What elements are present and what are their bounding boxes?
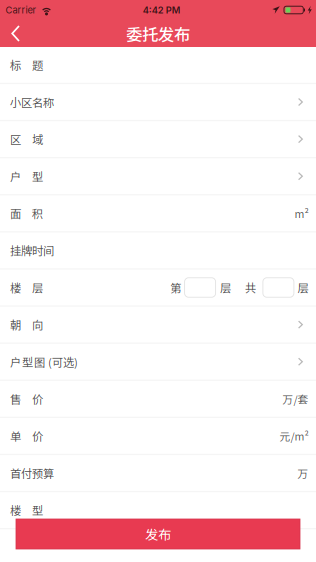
staticText: 户 型 xyxy=(10,168,43,184)
staticText: 委托发布 xyxy=(126,22,190,45)
staticText: m² xyxy=(294,206,308,221)
button[interactable]: 首付预算 xyxy=(0,455,316,492)
button[interactable]: 楼 层 xyxy=(0,270,316,307)
staticText: 面 积 xyxy=(10,205,43,221)
button[interactable]: Back xyxy=(0,21,34,46)
staticText: 楼 层 xyxy=(10,279,43,296)
staticText: 共 xyxy=(245,279,256,296)
button[interactable]: 户 型 xyxy=(0,158,316,195)
staticText: 元/m² xyxy=(279,428,308,444)
staticText: 层 xyxy=(297,279,308,296)
staticText: 标 题 xyxy=(10,57,43,73)
button[interactable]: 区 域 xyxy=(0,121,316,158)
button[interactable]: 挂牌时间 xyxy=(0,232,316,270)
button[interactable]: 楼 型 xyxy=(0,492,316,529)
staticText: 户 型 图 (可选) xyxy=(10,353,78,370)
staticText: 楼 型 xyxy=(10,502,43,518)
staticText: 单 价 xyxy=(10,428,43,444)
staticText: Carrier xyxy=(5,4,36,16)
button[interactable]: 标 题 xyxy=(0,47,316,84)
staticText: 层 xyxy=(220,279,231,296)
staticText: 4:42 PM xyxy=(143,4,181,16)
button[interactable]: 朝 向 xyxy=(0,307,316,344)
button[interactable]: 小区名称 xyxy=(0,84,316,121)
button[interactable]: 售 价 xyxy=(0,381,316,418)
button[interactable]: 面 积 xyxy=(0,195,316,232)
staticText: 区 域 xyxy=(10,131,43,147)
button[interactable]: 户 型 图 (可选) xyxy=(0,344,316,381)
button[interactable]: 单 价 xyxy=(0,418,316,455)
staticText: 发布 xyxy=(145,524,171,544)
staticText: 售 价 xyxy=(10,391,43,407)
button[interactable]: 发布 xyxy=(16,519,300,549)
staticText: 万/套 xyxy=(282,391,308,406)
staticText: 万 xyxy=(297,465,308,481)
staticText: 首付预算 xyxy=(10,465,54,481)
staticText: 小区名称 xyxy=(10,94,54,110)
staticText: 挂牌时间 xyxy=(10,242,54,259)
staticText: 第 xyxy=(170,279,181,296)
staticText: 朝 向 xyxy=(10,316,43,333)
